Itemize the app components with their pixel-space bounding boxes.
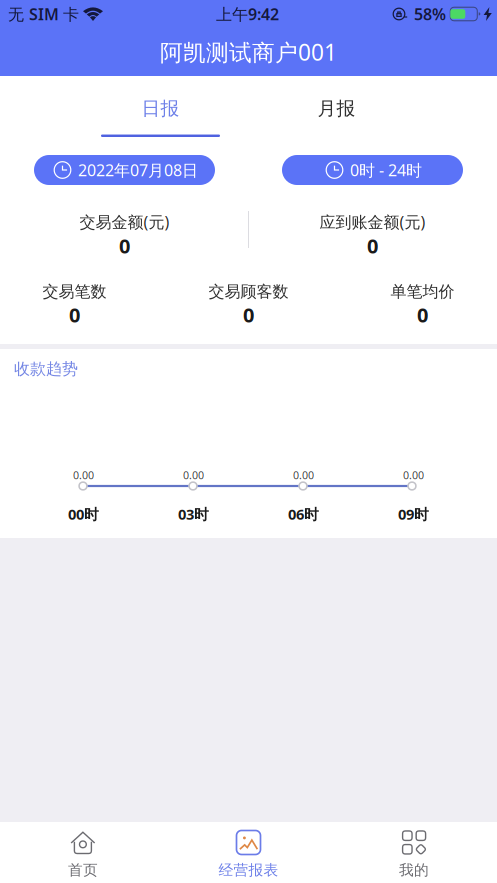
staticText: 交易金额(元): [79, 211, 169, 232]
staticText: 0: [69, 301, 80, 328]
staticText: 收款趋势: [14, 359, 78, 379]
staticText: 上午9:42: [216, 3, 279, 25]
staticText: 阿凯测试商户001: [160, 37, 337, 67]
button[interactable]: 0时 - 24时: [282, 155, 463, 185]
staticText: 58%: [414, 3, 446, 25]
staticText: 0: [119, 232, 130, 259]
staticText: 0: [367, 232, 378, 259]
button[interactable]: 2022年07月08日: [34, 155, 215, 185]
staticText: 单笔均价: [390, 282, 454, 302]
staticText: 0.00: [293, 468, 314, 482]
staticText: 2022年07月08日: [78, 159, 198, 181]
staticText: 00时: [68, 504, 99, 524]
staticText: 日报: [141, 97, 179, 120]
staticText: 0.00: [73, 468, 94, 482]
staticText: 经营报表: [218, 861, 278, 879]
staticText: 06时: [288, 504, 319, 524]
staticText: 0: [417, 301, 428, 328]
staticText: 月报: [317, 97, 355, 120]
staticText: 03时: [178, 504, 209, 524]
button[interactable]: 我的: [331, 822, 497, 883]
staticText: 交易笔数: [42, 282, 106, 302]
staticText: 0.00: [183, 468, 204, 482]
staticText: 无 SIM 卡: [8, 3, 79, 25]
staticText: 交易顾客数: [208, 282, 288, 302]
button[interactable]: 月报: [248, 76, 424, 137]
button[interactable]: 日报: [72, 76, 248, 137]
staticText: 0.00: [403, 468, 424, 482]
staticText: 应到账金额(元): [319, 211, 425, 232]
button[interactable]: 经营报表: [166, 822, 331, 883]
staticText: 0: [243, 301, 254, 328]
staticText: 0时 - 24时: [350, 159, 422, 181]
staticText: 首页: [68, 861, 98, 879]
staticText: 09时: [398, 504, 429, 524]
staticText: 我的: [399, 861, 429, 879]
button[interactable]: 首页: [0, 822, 166, 883]
